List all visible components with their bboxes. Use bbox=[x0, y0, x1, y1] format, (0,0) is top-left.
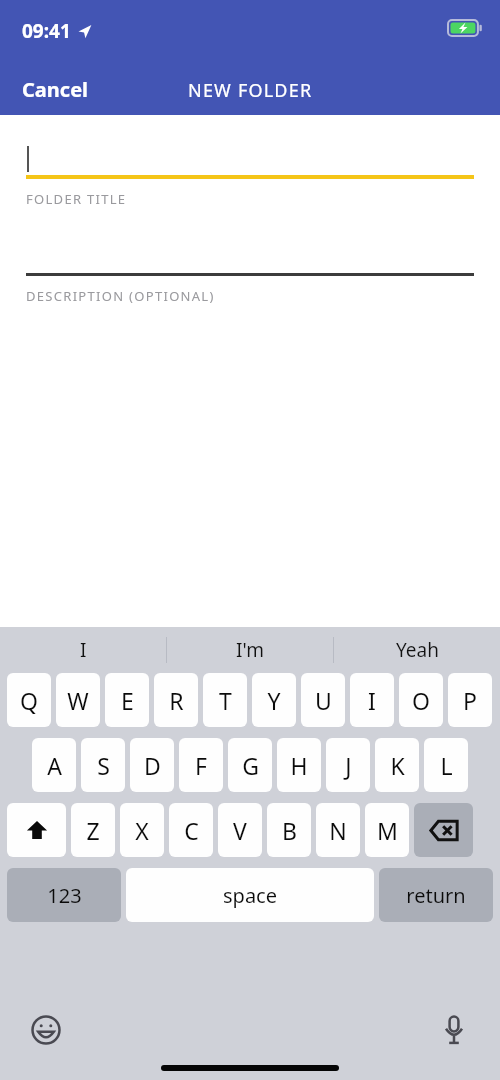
staticText: F bbox=[195, 750, 207, 781]
staticText: return bbox=[406, 882, 466, 909]
staticText: Y bbox=[267, 685, 281, 716]
button[interactable]: E bbox=[105, 673, 149, 727]
button[interactable]: A bbox=[32, 738, 76, 792]
button[interactable]: Dictation bbox=[434, 1010, 474, 1050]
button[interactable]: M bbox=[365, 803, 409, 857]
button[interactable]: Z bbox=[71, 803, 115, 857]
staticText: K bbox=[390, 750, 405, 781]
button[interactable]: V bbox=[218, 803, 262, 857]
button[interactable]: P bbox=[448, 673, 492, 727]
staticText: M bbox=[377, 815, 398, 846]
staticText: Yeah bbox=[396, 637, 439, 663]
button[interactable] bbox=[26, 143, 474, 175]
staticText: Cancel bbox=[22, 76, 89, 103]
button[interactable]: W bbox=[56, 673, 100, 727]
button[interactable]: Shift bbox=[7, 803, 66, 857]
button[interactable]: J bbox=[326, 738, 370, 792]
staticText: 09:41 bbox=[22, 18, 71, 44]
button[interactable]: B bbox=[267, 803, 311, 857]
staticText: B bbox=[282, 815, 297, 846]
staticText: L bbox=[440, 750, 453, 781]
button[interactable]: G bbox=[228, 738, 272, 792]
staticText: NEW FOLDER bbox=[188, 78, 313, 103]
staticText: D bbox=[144, 750, 161, 781]
button[interactable]: O bbox=[399, 673, 443, 727]
staticText: I bbox=[80, 637, 87, 663]
staticText: G bbox=[242, 750, 259, 781]
button[interactable]: space bbox=[126, 868, 374, 922]
staticText: J bbox=[345, 750, 352, 781]
button[interactable]: T bbox=[203, 673, 247, 727]
staticText: S bbox=[97, 750, 110, 781]
button[interactable]: F bbox=[179, 738, 223, 792]
button[interactable]: Yeah bbox=[334, 627, 500, 673]
staticText: DESCRIPTION (OPTIONAL) bbox=[26, 287, 215, 305]
staticText: I bbox=[368, 685, 376, 716]
button[interactable]: D bbox=[130, 738, 174, 792]
button[interactable]: Backspace bbox=[414, 803, 473, 857]
staticText: H bbox=[290, 750, 308, 781]
staticText: N bbox=[329, 815, 347, 846]
button[interactable]: C bbox=[169, 803, 213, 857]
staticText: A bbox=[47, 750, 62, 781]
button[interactable]: I bbox=[0, 627, 166, 673]
staticText: space bbox=[223, 882, 277, 909]
button[interactable]: 123 bbox=[7, 868, 121, 922]
staticText: V bbox=[233, 815, 247, 846]
staticText: 123 bbox=[47, 882, 82, 909]
staticText: FOLDER TITLE bbox=[26, 190, 127, 208]
staticText: I'm bbox=[236, 637, 264, 663]
button[interactable]: R bbox=[154, 673, 198, 727]
staticText: U bbox=[315, 685, 332, 716]
button[interactable]: N bbox=[316, 803, 360, 857]
button[interactable]: X bbox=[120, 803, 164, 857]
button[interactable]: U bbox=[301, 673, 345, 727]
staticText: R bbox=[169, 685, 184, 716]
button[interactable]: S bbox=[81, 738, 125, 792]
staticText: W bbox=[67, 685, 89, 716]
button[interactable]: K bbox=[375, 738, 419, 792]
staticText: Z bbox=[86, 815, 100, 846]
button[interactable]: H bbox=[277, 738, 321, 792]
button[interactable]: Cancel bbox=[10, 70, 101, 109]
staticText: C bbox=[184, 815, 199, 846]
button[interactable]: I'm bbox=[167, 627, 333, 673]
staticText: Q bbox=[20, 685, 38, 716]
staticText: E bbox=[121, 685, 134, 716]
button[interactable]: Y bbox=[252, 673, 296, 727]
button[interactable]: return bbox=[379, 868, 493, 922]
staticText: P bbox=[463, 685, 477, 716]
button[interactable]: Emoji bbox=[26, 1010, 66, 1050]
staticText: T bbox=[219, 685, 232, 716]
button[interactable]: Q bbox=[7, 673, 51, 727]
staticText: X bbox=[135, 815, 149, 846]
button[interactable]: I bbox=[350, 673, 394, 727]
staticText: O bbox=[412, 685, 430, 716]
button[interactable]: L bbox=[424, 738, 468, 792]
